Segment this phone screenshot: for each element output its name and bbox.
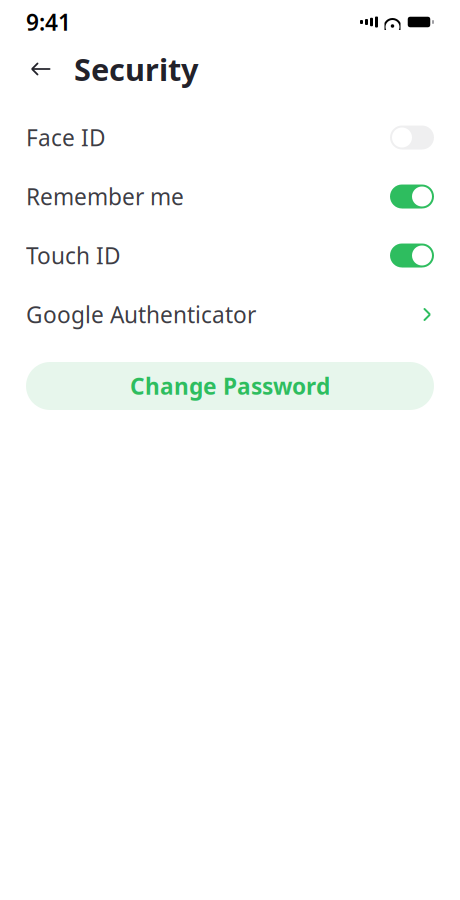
button[interactable]: Touch ID: [0, 226, 460, 285]
staticText: Google Authenticator: [26, 299, 256, 329]
staticText: Touch ID: [26, 240, 121, 270]
staticText: Security: [74, 49, 199, 89]
button[interactable]: Face ID: [0, 108, 460, 167]
button[interactable]: Back: [26, 54, 56, 84]
staticText: Remember me: [26, 181, 184, 211]
staticText: 9:41: [26, 7, 71, 37]
staticText: Face ID: [26, 122, 106, 152]
button[interactable]: Google Authenticator: [0, 285, 460, 344]
button[interactable]: Remember me: [0, 167, 460, 226]
button[interactable]: Change Password: [26, 362, 434, 410]
staticText: Change Password: [130, 371, 330, 401]
